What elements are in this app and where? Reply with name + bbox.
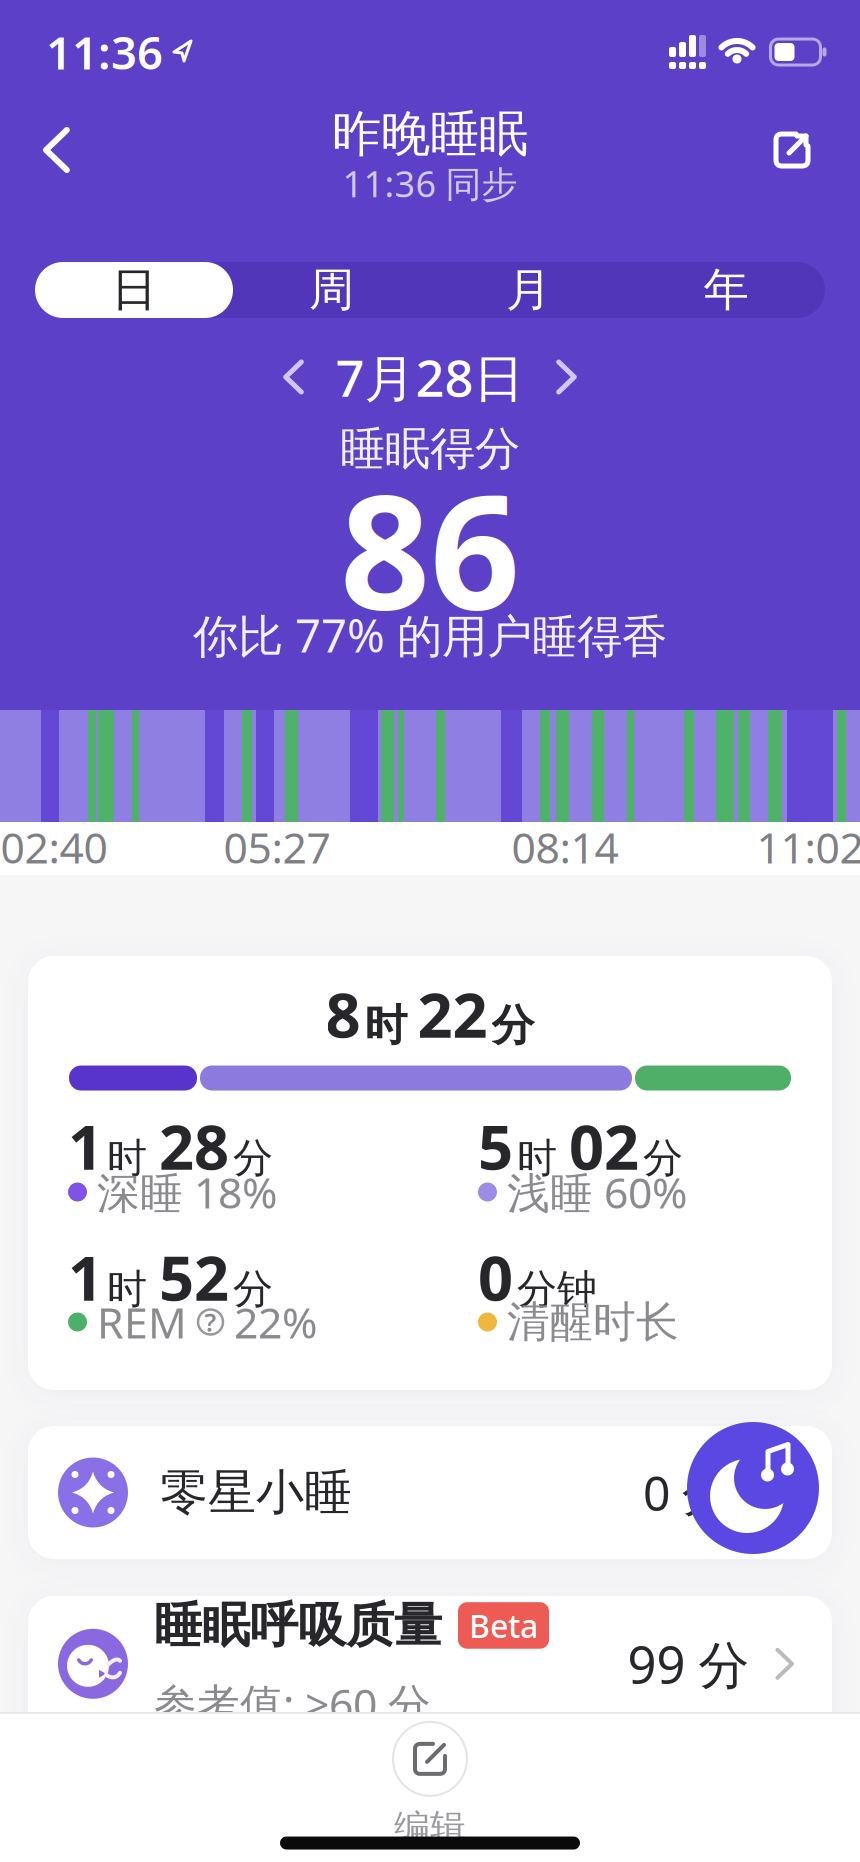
- staticText: 编辑: [394, 1806, 466, 1850]
- button[interactable]: 月: [430, 262, 627, 318]
- staticText: Beta: [469, 1604, 538, 1647]
- staticText: 零星小睡: [160, 1463, 352, 1522]
- button[interactable]: 编辑: [393, 1722, 467, 1850]
- staticText: 05:27: [223, 819, 330, 875]
- staticText: ?: [204, 1305, 216, 1339]
- button[interactable]: 零星小睡: [28, 1426, 832, 1559]
- staticText: 1: [68, 1105, 103, 1187]
- staticText: 0 分钟: [643, 1461, 778, 1524]
- staticText: 深睡 18%: [97, 1164, 277, 1220]
- staticText: 11:36: [46, 22, 163, 82]
- button[interactable]: 年: [627, 262, 825, 318]
- button[interactable]: 助眠音乐: [687, 1422, 819, 1554]
- staticText: 7月28日: [335, 343, 524, 411]
- staticText: 22: [417, 973, 487, 1055]
- button[interactable]: 周: [233, 262, 430, 318]
- button[interactable]: 分享: [774, 112, 860, 188]
- staticText: 你比 77% 的用户睡得香: [193, 605, 667, 665]
- staticText: REM: [97, 1294, 187, 1350]
- button[interactable]: 前一天: [271, 349, 315, 405]
- staticText: 22%: [234, 1294, 317, 1350]
- staticText: 周: [309, 262, 354, 318]
- staticText: 日: [111, 262, 156, 318]
- staticText: 年: [703, 262, 748, 318]
- staticText: 分: [491, 999, 534, 1052]
- staticText: 0: [478, 1236, 513, 1318]
- staticText: 清醒时长: [507, 1296, 679, 1348]
- staticText: 02: [569, 1105, 639, 1187]
- staticText: 02:40: [0, 819, 107, 875]
- staticText: 28: [159, 1105, 229, 1187]
- staticText: 时: [107, 1134, 147, 1183]
- staticText: 11:36 同步: [342, 159, 517, 207]
- staticText: 分: [233, 1134, 273, 1183]
- staticText: 8: [325, 973, 360, 1055]
- staticText: 11:02: [756, 819, 860, 875]
- staticText: 睡眠得分: [340, 421, 520, 477]
- staticText: 时: [517, 1134, 557, 1183]
- staticText: 08:14: [511, 819, 618, 875]
- staticText: 时: [364, 999, 407, 1052]
- staticText: 分钟: [517, 1265, 597, 1314]
- staticText: 昨晚睡眠: [332, 104, 528, 164]
- staticText: 浅睡 60%: [507, 1164, 687, 1220]
- button[interactable]: 返回: [0, 110, 67, 190]
- staticText: 99 分: [627, 1630, 749, 1697]
- button[interactable]: 日: [35, 262, 233, 318]
- button[interactable]: 睡眠呼吸质量: [28, 1596, 832, 1810]
- staticText: 睡眠呼吸质量: [154, 1596, 442, 1655]
- staticText: 52: [159, 1236, 229, 1318]
- button[interactable]: 后一天: [544, 349, 588, 405]
- staticText: 5: [478, 1105, 513, 1187]
- staticText: 1: [68, 1236, 103, 1318]
- staticText: 参考值: >60 分: [154, 1675, 431, 1732]
- staticText: 月: [506, 262, 551, 318]
- staticText: 时: [107, 1265, 147, 1314]
- staticText: 86: [340, 443, 520, 652]
- staticText: 分: [233, 1265, 273, 1314]
- staticText: 分: [643, 1134, 683, 1183]
